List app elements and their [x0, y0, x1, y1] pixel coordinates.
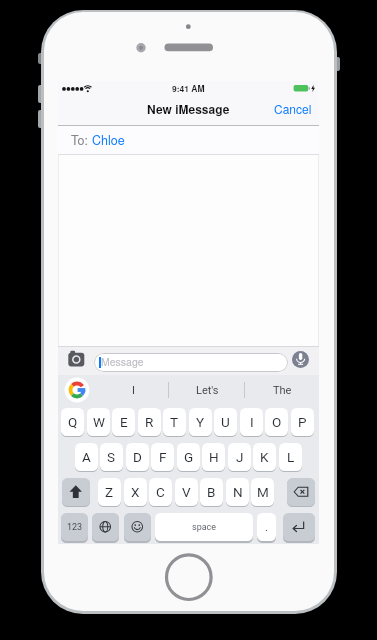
staticText: E: [120, 414, 128, 430]
button[interactable]: B: [200, 478, 223, 506]
button[interactable]: D: [126, 443, 149, 471]
staticText: C: [156, 484, 165, 500]
button[interactable]: [92, 513, 119, 541]
button[interactable]: Z: [98, 478, 121, 506]
button[interactable]: N: [226, 478, 249, 506]
button[interactable]: R: [138, 408, 161, 436]
button[interactable]: [68, 350, 85, 367]
button[interactable]: To:: [58, 126, 319, 154]
button[interactable]: T: [163, 408, 186, 436]
staticText: B: [207, 484, 216, 500]
button[interactable]: K: [253, 443, 276, 471]
staticText: New iMessage: [147, 100, 230, 117]
button[interactable]: L: [279, 443, 302, 471]
staticText: I: [132, 384, 135, 397]
button[interactable]: The: [245, 375, 319, 406]
button[interactable]: F: [151, 443, 174, 471]
staticText: 123: [67, 522, 83, 533]
button[interactable]: Cancel: [270, 94, 319, 123]
button[interactable]: J: [228, 443, 251, 471]
staticText: space: [192, 522, 217, 533]
staticText: The: [273, 384, 292, 397]
staticText: F: [159, 449, 167, 465]
button[interactable]: [167, 555, 212, 600]
staticText: Let's: [196, 384, 219, 397]
button[interactable]: G: [177, 443, 200, 471]
button[interactable]: space: [155, 513, 253, 541]
button[interactable]: 123: [61, 513, 88, 541]
staticText: O: [272, 414, 282, 430]
staticText: L: [287, 449, 295, 465]
button[interactable]: [63, 376, 91, 404]
staticText: K: [260, 449, 269, 465]
button[interactable]: E: [112, 408, 135, 436]
staticText: N: [233, 484, 243, 500]
staticText: T: [170, 414, 179, 430]
staticText: M: [257, 484, 269, 500]
staticText: To:: [71, 131, 88, 149]
staticText: S: [107, 449, 116, 465]
staticText: I: [250, 414, 254, 430]
button[interactable]: W: [87, 408, 110, 436]
button[interactable]: H: [202, 443, 225, 471]
button[interactable]: Q: [61, 408, 84, 436]
staticText: X: [131, 484, 140, 500]
staticText: V: [182, 484, 191, 500]
staticText: U: [221, 414, 230, 430]
staticText: D: [133, 449, 142, 465]
button[interactable]: S: [100, 443, 123, 471]
staticText: .: [265, 521, 268, 534]
button[interactable]: [292, 351, 309, 368]
staticText: Cancel: [274, 100, 312, 117]
button[interactable]: M: [251, 478, 274, 506]
staticText: Z: [105, 484, 114, 500]
button[interactable]: I: [240, 408, 263, 436]
button[interactable]: Let's: [169, 375, 245, 406]
button[interactable]: P: [291, 408, 314, 436]
staticText: W: [93, 414, 105, 430]
staticText: R: [145, 414, 154, 430]
staticText: A: [82, 449, 91, 465]
button[interactable]: [287, 478, 315, 506]
button[interactable]: V: [175, 478, 198, 506]
staticText: J: [236, 449, 244, 465]
staticText: Q: [68, 414, 78, 430]
staticText: Message: [101, 354, 144, 369]
staticText: G: [184, 449, 194, 465]
button[interactable]: Y: [189, 408, 212, 436]
button[interactable]: .: [257, 513, 276, 541]
button[interactable]: X: [124, 478, 147, 506]
staticText: Chloe: [92, 131, 125, 149]
button[interactable]: U: [214, 408, 237, 436]
button[interactable]: A: [75, 443, 98, 471]
staticText: 9:41 AM: [172, 82, 205, 94]
button[interactable]: [283, 513, 315, 541]
staticText: H: [209, 449, 219, 465]
button[interactable]: I: [97, 375, 169, 406]
staticText: Y: [196, 414, 205, 430]
button[interactable]: [124, 513, 151, 541]
button[interactable]: C: [149, 478, 172, 506]
button[interactable]: O: [265, 408, 288, 436]
button[interactable]: Message: [94, 353, 288, 372]
staticText: P: [298, 414, 307, 430]
button[interactable]: [62, 478, 90, 506]
